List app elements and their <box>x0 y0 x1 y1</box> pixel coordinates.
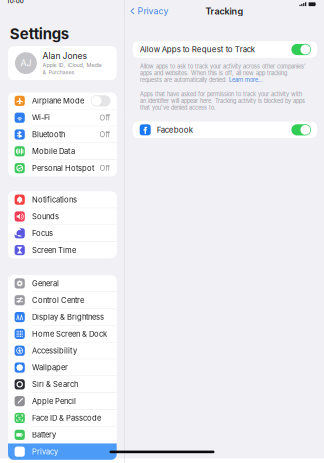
button[interactable]: Privacy <box>125 5 174 17</box>
staticText: Apps that have asked for permission to t… <box>140 91 305 111</box>
button[interactable]: Home Screen & Dock <box>8 326 117 342</box>
staticText: Bluetooth <box>32 130 65 139</box>
staticText: AJ <box>20 58 31 68</box>
button[interactable]: Control Centre <box>8 292 117 308</box>
button[interactable]: Mobile Data <box>8 143 117 159</box>
button[interactable]: Wallpaper <box>8 359 117 376</box>
staticText: Wallpaper <box>32 363 68 372</box>
staticText: & Purchases <box>42 69 74 75</box>
staticText: Airplane Mode <box>32 96 84 105</box>
staticText: Apple ID, iCloud, Media <box>42 62 101 68</box>
staticText: Personal Hotspot <box>32 163 94 173</box>
button[interactable]: Focus <box>8 225 117 241</box>
button[interactable]: Accessibility <box>8 343 117 359</box>
staticText: Off <box>99 130 110 139</box>
button[interactable]: Notifications <box>8 191 117 208</box>
staticText: Off <box>99 113 110 122</box>
staticText: Off <box>99 164 110 173</box>
staticText: Face ID & Passcode <box>32 413 101 423</box>
button[interactable]: General <box>8 275 117 292</box>
staticText: Alan Jones <box>42 51 87 61</box>
button[interactable]: Apple Pencil <box>8 393 117 409</box>
button[interactable]: Face ID & Passcode <box>8 410 117 426</box>
staticText: Mobile Data <box>32 147 75 156</box>
staticText: Tracking <box>205 6 243 17</box>
button[interactable]: Siri & Search <box>8 376 117 392</box>
button[interactable]: Sounds <box>8 208 117 225</box>
staticText: Wi-Fi <box>32 113 50 122</box>
staticText: Allow apps to ask to track your activity… <box>140 63 305 83</box>
staticText: Apple Pencil <box>32 397 76 406</box>
button[interactable]: Bluetooth <box>8 126 117 143</box>
button[interactable]: Personal Hotspot <box>8 160 117 176</box>
staticText: 10:00 <box>7 0 24 5</box>
staticText: Sounds <box>32 212 59 221</box>
button[interactable]: AJ <box>8 46 117 80</box>
staticText: Screen Time <box>32 245 76 255</box>
button[interactable]: Screen Time <box>8 242 117 258</box>
staticText: Focus <box>32 229 53 238</box>
staticText: Allow Apps to Request to Track <box>140 45 255 54</box>
staticText: Home Screen & Dock <box>32 329 107 338</box>
staticText: Notifications <box>32 195 77 204</box>
staticText: Settings <box>10 25 69 43</box>
button[interactable]: Facebook <box>133 122 317 138</box>
staticText: Privacy <box>137 6 168 16</box>
staticText: Siri & Search <box>32 380 78 389</box>
button[interactable]: Privacy <box>8 443 117 460</box>
staticText: Display & Brightness <box>32 312 104 322</box>
staticText: Accessibility <box>32 346 77 355</box>
staticText: Facebook <box>157 125 193 135</box>
button[interactable]: Allow Apps to Request to Track <box>133 41 317 58</box>
staticText: General <box>32 279 59 288</box>
button[interactable]: Battery <box>8 427 117 443</box>
staticText: Control Centre <box>32 296 84 305</box>
staticText: Privacy <box>32 447 58 456</box>
button[interactable]: Display & Brightness <box>8 309 117 325</box>
button[interactable]: Airplane Mode <box>8 93 117 109</box>
button[interactable]: Wi-Fi <box>8 109 117 126</box>
staticText: Battery <box>32 430 56 439</box>
